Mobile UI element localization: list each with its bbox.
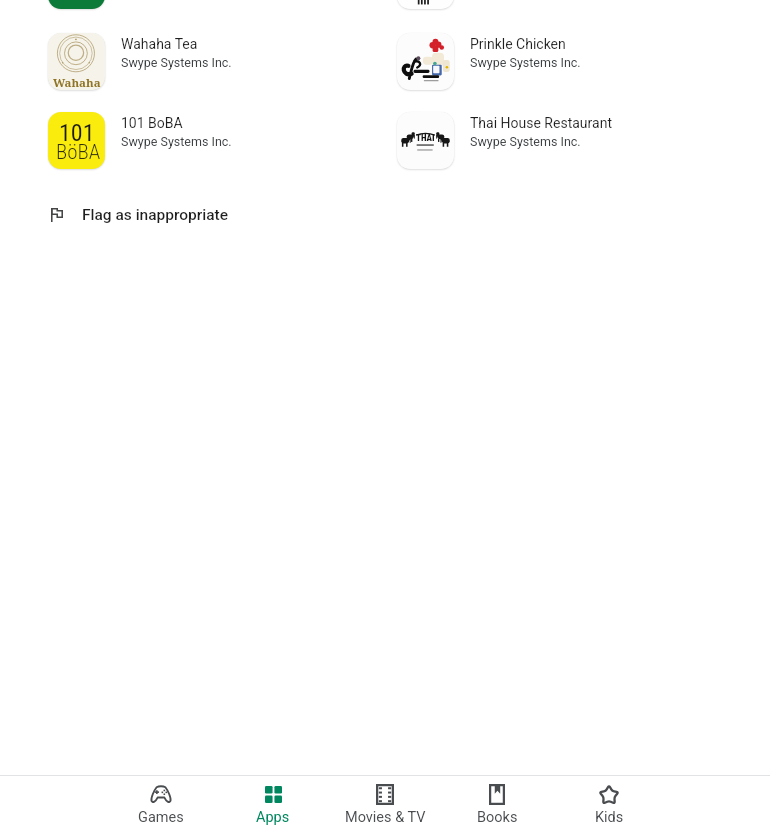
staticText: Swype Systems Inc.	[470, 134, 581, 149]
staticText: Kids	[595, 809, 624, 826]
other: Games	[150, 785, 172, 804]
staticText: Books	[477, 809, 518, 826]
button[interactable]: Books	[441, 776, 553, 831]
staticText: 101 BoBA	[121, 115, 183, 131]
button[interactable]: Apps	[217, 776, 329, 831]
staticText: Flag as inappropriate	[82, 206, 229, 224]
button[interactable]: App	[397, 0, 454, 9]
button[interactable]: Movies and TV	[329, 776, 441, 831]
other: Apps	[265, 786, 282, 803]
other: Kids	[598, 784, 620, 805]
staticText: Wahaha Tea	[121, 36, 198, 52]
staticText: Movies & TV	[345, 809, 426, 826]
staticText: 101	[59, 119, 95, 147]
staticText: Thai House Restaurant	[470, 115, 612, 131]
staticText: Swype Systems Inc.	[121, 55, 232, 70]
button[interactable]: Kids	[553, 776, 665, 831]
staticText: Games	[138, 809, 184, 826]
button[interactable]: Prinkle Chicken	[397, 33, 717, 90]
button[interactable]: Flag as inappropriate	[40, 199, 229, 231]
other: Movies and TV	[376, 784, 394, 805]
staticText: Swype Systems Inc.	[470, 55, 581, 70]
staticText: Apps	[256, 809, 290, 826]
staticText: THAI	[416, 133, 435, 144]
button[interactable]: App	[48, 0, 105, 9]
other: Books	[489, 784, 505, 805]
button[interactable]: Wahaha	[48, 33, 368, 90]
staticText: BöBA	[56, 140, 101, 165]
button[interactable]: 101	[48, 112, 368, 169]
button[interactable]: Games	[105, 776, 217, 831]
button[interactable]: THAI	[397, 112, 717, 169]
staticText: Swype Systems Inc.	[121, 134, 232, 149]
staticText: Prinkle Chicken	[470, 36, 566, 52]
staticText: Wahaha	[53, 75, 101, 90]
